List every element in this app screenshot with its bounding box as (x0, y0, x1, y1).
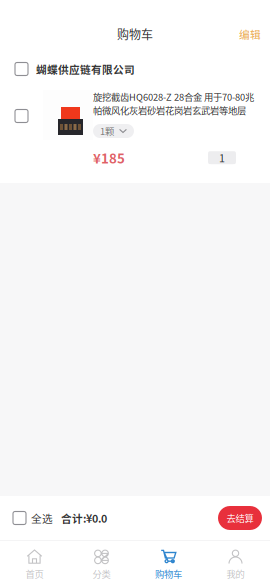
staticText: 1颗 (100, 124, 114, 138)
button[interactable]: 1颗 (93, 124, 134, 138)
staticText: 合计:¥0.0 (61, 510, 107, 526)
button[interactable]: 去结算 (218, 506, 262, 530)
staticText: 去结算 (226, 511, 253, 525)
button[interactable]: 购物车 (135, 540, 202, 584)
staticText: 我的 (226, 567, 244, 580)
staticText: 购物车 (117, 25, 153, 43)
staticText: 全选 (31, 510, 53, 526)
staticText: 分类 (92, 567, 110, 580)
staticText: ¥185 (93, 148, 125, 167)
staticText: 首页 (25, 567, 43, 580)
staticText: 蝴蝶供应链有限公司 (36, 61, 135, 77)
button[interactable]: 分类 (68, 540, 135, 584)
button[interactable]: 全选 (0, 496, 61, 540)
staticText: 旋挖截齿HQ6028-Z 28合金 用于70-80兆帕微风化灰岩砂岩花岗岩玄武岩… (93, 90, 254, 117)
button[interactable]: 蝴蝶供应链有限公司 (0, 51, 270, 87)
button[interactable]: 编辑 (230, 21, 270, 47)
button[interactable]: 我的 (202, 540, 269, 584)
staticText: 1 (219, 150, 225, 165)
button[interactable]: 首页 (1, 540, 68, 584)
button[interactable] (0, 90, 43, 142)
staticText: 购物车 (155, 567, 182, 580)
button[interactable]: 1 (208, 151, 236, 164)
staticText: 编辑 (239, 26, 261, 42)
